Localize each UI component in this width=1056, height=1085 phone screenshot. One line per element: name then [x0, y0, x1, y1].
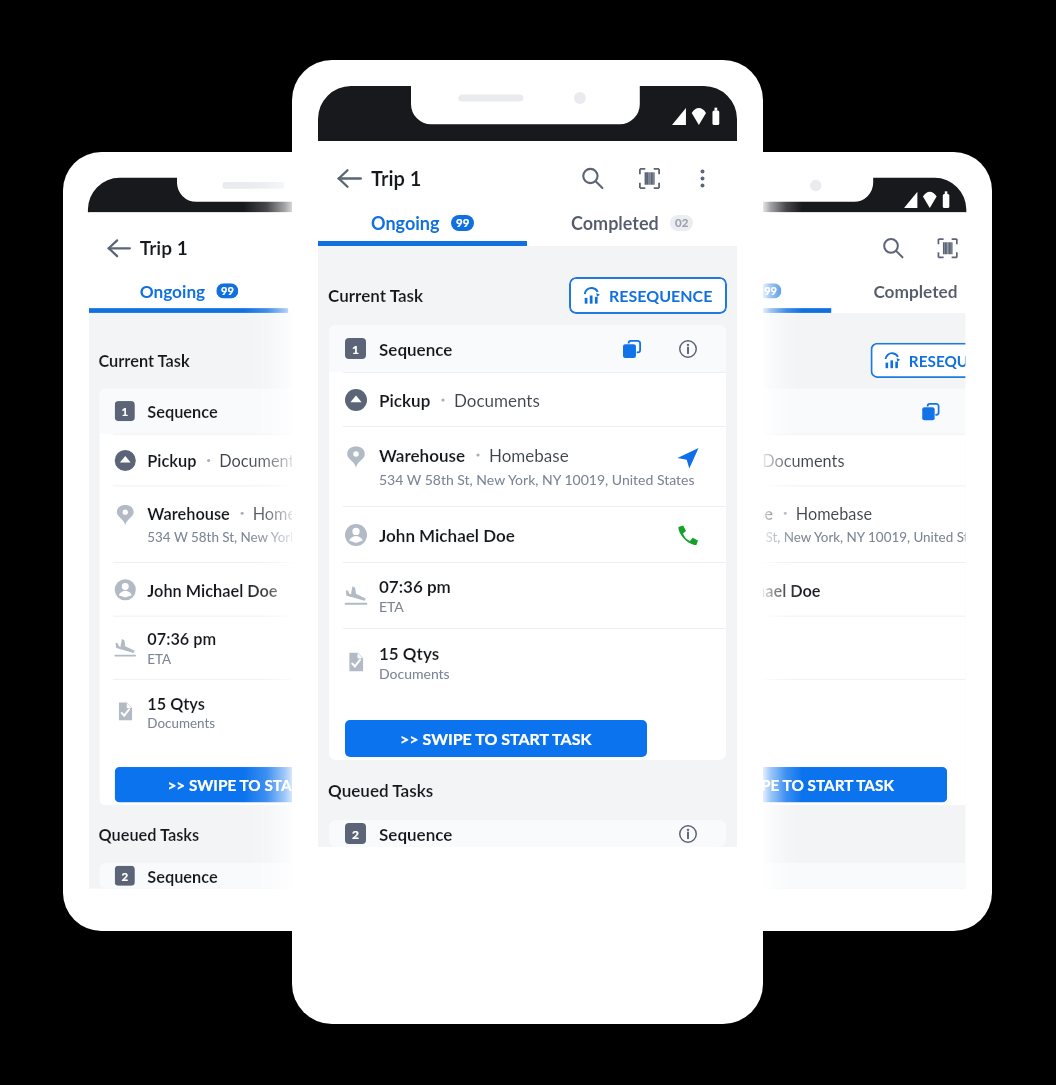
- staticText: Queued Tasks: [641, 824, 743, 844]
- staticText: 1: [121, 405, 128, 418]
- staticText: RESEQUENCE: [609, 286, 713, 305]
- button[interactable]: Back: [332, 161, 366, 195]
- button[interactable]: John Michael Doe: [642, 563, 965, 616]
- staticText: RESEQUENCE: [909, 351, 965, 369]
- button[interactable]: More options: [687, 163, 717, 193]
- staticText: Documents: [379, 665, 450, 682]
- button[interactable]: Search: [874, 230, 911, 266]
- staticText: RESEQUENCE: [366, 351, 465, 369]
- staticText: Current Task: [98, 350, 190, 369]
- button[interactable]: Pickup: [329, 373, 726, 426]
- button[interactable]: Ongoing: [89, 269, 288, 313]
- staticText: 07:36 pm: [379, 576, 451, 596]
- button[interactable]: John Michael Doe: [329, 507, 726, 562]
- button[interactable]: Scan barcode: [630, 159, 668, 197]
- staticText: 534 W 58th St, New York, NY 10019, Unite…: [379, 471, 674, 488]
- staticText: Queued Tasks: [98, 824, 200, 844]
- button[interactable]: Call: [674, 521, 702, 549]
- button[interactable]: Pickup: [99, 435, 478, 485]
- staticText: 07:36 pm: [690, 629, 759, 648]
- button[interactable]: Ongoing: [318, 200, 527, 246]
- button[interactable]: Call: [428, 576, 455, 603]
- staticText: Ongoing: [683, 280, 749, 301]
- button[interactable]: Warehouse: [642, 486, 965, 562]
- staticText: Sequence: [147, 867, 218, 886]
- staticText: Documents: [762, 451, 845, 470]
- staticText: Documents: [690, 714, 758, 731]
- staticText: Current Task: [328, 285, 424, 305]
- staticText: Completed: [571, 212, 659, 234]
- button[interactable]: Duplicate: [374, 398, 401, 425]
- button[interactable]: Completed: [527, 200, 737, 246]
- staticText: 534 W 58th St, New York, NY 10019, Unite…: [690, 528, 965, 545]
- button[interactable]: 1: [642, 389, 965, 434]
- button[interactable]: Search: [331, 230, 368, 266]
- button[interactable]: Pickup: [642, 435, 965, 485]
- button[interactable]: 15 Qtys: [642, 680, 965, 743]
- staticText: Ongoing: [140, 280, 206, 301]
- staticText: Warehouse: [379, 445, 466, 465]
- staticText: ETA: [379, 598, 404, 615]
- button[interactable]: Completed: [288, 269, 488, 313]
- staticText: Ongoing: [371, 212, 440, 234]
- button[interactable]: 07:36 pm: [99, 617, 478, 679]
- staticText: 2: [121, 869, 128, 883]
- button[interactable]: John Michael Doe: [99, 563, 478, 616]
- staticText: Homebase: [489, 445, 569, 465]
- staticText: ETA: [147, 650, 171, 666]
- staticText: 2: [352, 827, 359, 841]
- button[interactable]: Warehouse: [99, 486, 478, 562]
- button[interactable]: Information: [674, 820, 702, 847]
- button[interactable]: Information: [428, 398, 455, 425]
- staticText: Current Task: [641, 350, 733, 369]
- button[interactable]: 07:36 pm: [329, 563, 726, 628]
- button[interactable]: Back: [102, 231, 135, 264]
- staticText: >> SWIPE TO START TASK: [400, 729, 592, 748]
- button[interactable]: Duplicate: [618, 335, 646, 363]
- staticText: Queued Tasks: [328, 780, 434, 800]
- staticText: Sequence: [379, 824, 453, 844]
- button[interactable]: 2: [329, 820, 726, 847]
- button[interactable]: Navigate: [674, 444, 702, 472]
- staticText: Trip 1: [683, 236, 732, 259]
- button[interactable]: 15 Qtys: [99, 680, 478, 743]
- staticText: 99: [221, 284, 234, 298]
- staticText: Trip 1: [140, 236, 188, 259]
- button[interactable]: Search: [573, 159, 611, 197]
- staticText: Pickup: [690, 451, 740, 470]
- staticText: Warehouse: [690, 504, 774, 523]
- button[interactable]: RESEQUENCE: [327, 343, 479, 378]
- button[interactable]: >> SWIPE TO START TASK: [658, 767, 947, 802]
- button[interactable]: Navigate: [428, 503, 455, 529]
- button[interactable]: 15 Qtys: [329, 629, 726, 695]
- staticText: 15 Qtys: [147, 693, 206, 712]
- button[interactable]: Scan barcode: [929, 230, 965, 266]
- staticText: Pickup: [147, 451, 197, 470]
- button[interactable]: 1: [329, 325, 726, 372]
- staticText: Warehouse: [147, 504, 231, 523]
- button[interactable]: RESEQUENCE: [870, 343, 965, 378]
- button[interactable]: Ongoing: [632, 269, 831, 313]
- button[interactable]: Completed: [831, 269, 965, 313]
- staticText: Completed: [330, 280, 415, 301]
- button[interactable]: Warehouse: [329, 427, 726, 506]
- button[interactable]: 2: [99, 863, 478, 889]
- button[interactable]: RESEQUENCE: [569, 277, 727, 314]
- button[interactable]: >> SWIPE TO START TASK: [115, 767, 404, 802]
- button[interactable]: Information: [674, 335, 702, 363]
- staticText: >> SWIPE TO START TASK: [710, 776, 894, 794]
- staticText: Completed: [873, 280, 958, 301]
- button[interactable]: 1: [99, 389, 478, 434]
- button[interactable]: Scan barcode: [386, 230, 422, 266]
- button[interactable]: More options: [440, 233, 469, 262]
- button[interactable]: >> SWIPE TO START TASK: [345, 720, 647, 757]
- button[interactable]: Back: [645, 231, 678, 264]
- staticText: Sequence: [147, 402, 218, 421]
- staticText: Documents: [219, 451, 302, 470]
- button[interactable]: Duplicate: [917, 398, 944, 425]
